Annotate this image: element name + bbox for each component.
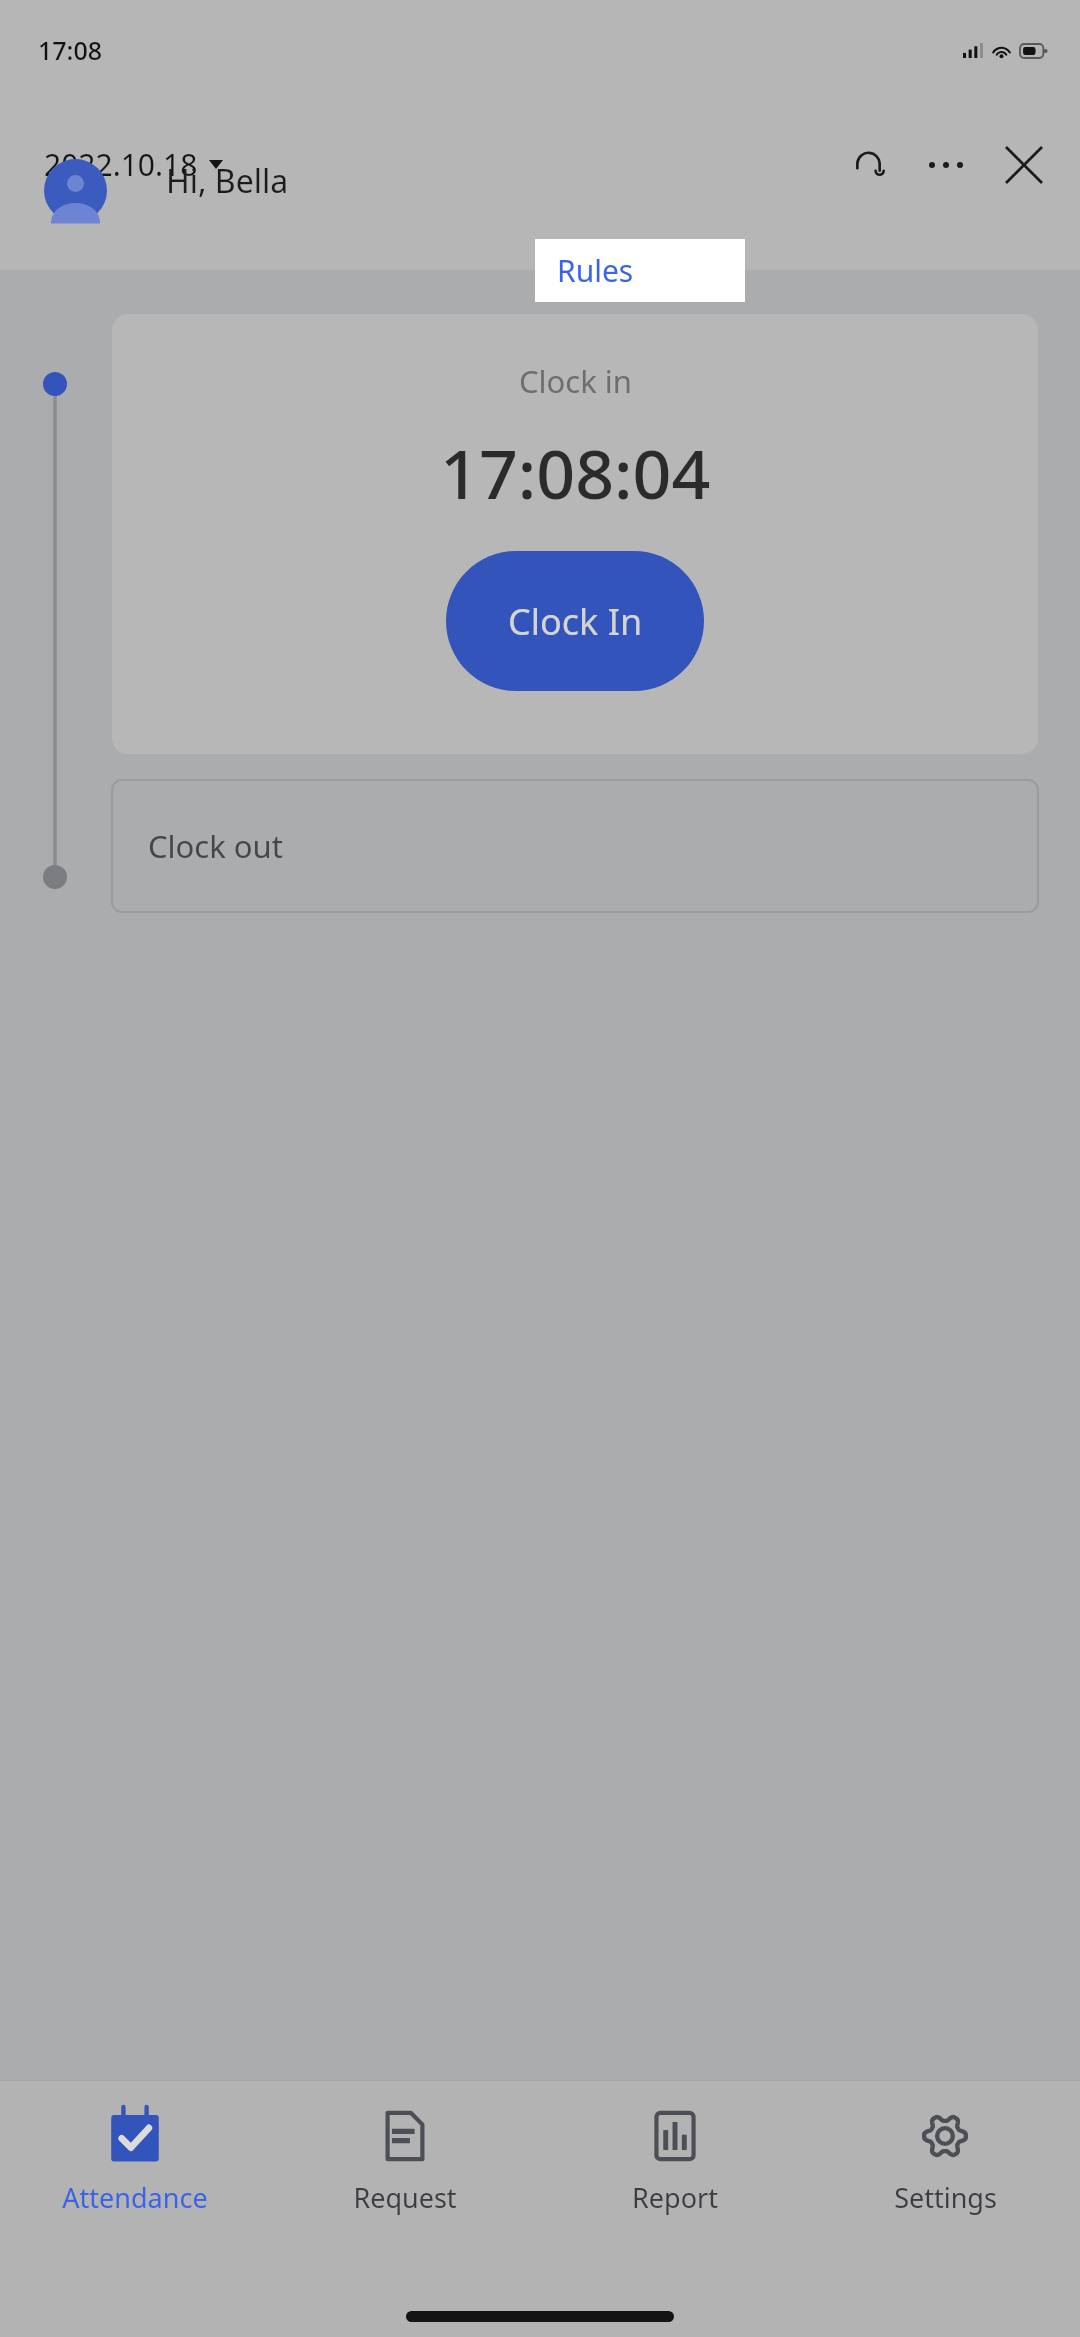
button[interactable]: More options bbox=[918, 137, 974, 193]
staticText: Clock In bbox=[508, 597, 643, 646]
button[interactable]: Clock In bbox=[446, 551, 704, 691]
button[interactable]: Rules bbox=[535, 239, 745, 302]
button[interactable]: Support bbox=[840, 137, 896, 193]
button[interactable]: Clock in bbox=[112, 314, 1038, 754]
staticText: Clock in bbox=[519, 360, 632, 402]
button[interactable]: Attendance bbox=[0, 2081, 270, 2241]
staticText: Hi, Bella bbox=[166, 159, 289, 203]
button[interactable]: Clock out bbox=[112, 780, 1038, 912]
staticText: Attendance bbox=[62, 2179, 208, 2216]
staticText: Clock out bbox=[148, 825, 283, 867]
staticText: 2022.10.18 bbox=[44, 144, 198, 185]
staticText: Report bbox=[632, 2179, 718, 2216]
button[interactable]: 2022.10.18 bbox=[44, 144, 223, 185]
button[interactable]: Report bbox=[540, 2081, 810, 2241]
staticText: 17:08 bbox=[38, 33, 103, 67]
button[interactable]: Settings bbox=[810, 2081, 1080, 2241]
staticText: Rules bbox=[557, 250, 634, 291]
button[interactable]: Request bbox=[270, 2081, 540, 2241]
staticText: 17:08:04 bbox=[440, 426, 711, 519]
staticText: Settings bbox=[894, 2179, 997, 2216]
staticText: Request bbox=[353, 2179, 457, 2216]
button[interactable]: Close bbox=[996, 137, 1052, 193]
